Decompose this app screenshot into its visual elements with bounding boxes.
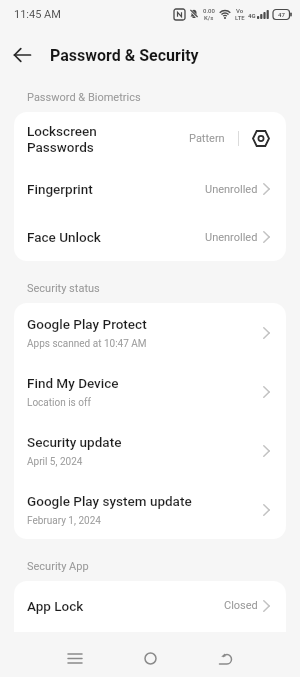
staticText: Password & Security — [50, 46, 199, 65]
staticText: Unenrolled — [205, 183, 258, 196]
staticText: Pattern — [189, 132, 225, 145]
button[interactable] — [188, 640, 263, 677]
staticText: Google Play Protect — [27, 316, 147, 332]
button[interactable] — [113, 640, 188, 677]
staticText: Face Unlock — [27, 229, 101, 245]
staticText: Security App — [27, 560, 89, 573]
button[interactable]: Fingerprint — [14, 165, 286, 213]
staticText: 4G — [248, 12, 256, 19]
staticText: Apps scanned at 10:47 AM — [27, 338, 147, 350]
button[interactable]: Security update — [14, 421, 286, 480]
staticText: February 1, 2024 — [27, 515, 101, 527]
button[interactable]: Face Unlock — [14, 213, 286, 261]
staticText: K/s — [204, 14, 214, 21]
button[interactable]: App Lock — [14, 581, 286, 630]
staticText: Location is off — [27, 397, 91, 409]
staticText: Security status — [27, 282, 100, 295]
button[interactable]: Google Play Protect — [14, 303, 286, 362]
staticText: Password & Biometrics — [27, 91, 141, 104]
staticText: 47 — [278, 11, 285, 18]
button[interactable]: Google Play system update — [14, 480, 286, 539]
staticText: 0.00 — [203, 7, 215, 14]
button[interactable]: Find My Device — [14, 362, 286, 421]
button[interactable] — [14, 39, 46, 71]
staticText: Security update — [27, 434, 122, 450]
staticText: Vo — [236, 7, 244, 14]
staticText: Unenrolled — [205, 231, 258, 244]
button[interactable] — [37, 640, 113, 677]
staticText: Google Play system update — [27, 493, 192, 509]
staticText: 11:45 AM — [14, 8, 61, 21]
staticText: Fingerprint — [27, 181, 93, 197]
button[interactable]: Lockscreen — [14, 112, 286, 165]
staticText: Find My Device — [27, 375, 119, 391]
staticText: Closed — [224, 599, 258, 612]
staticText: April 5, 2024 — [27, 456, 83, 468]
staticText: LTE — [235, 14, 245, 21]
staticText: Passwords — [27, 139, 94, 155]
staticText: App Lock — [27, 598, 84, 614]
staticText: Lockscreen — [27, 123, 97, 139]
